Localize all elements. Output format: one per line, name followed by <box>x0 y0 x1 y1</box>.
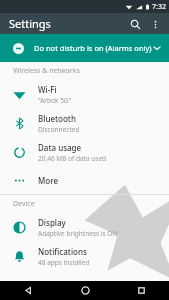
staticText: 48 apps installed <box>38 258 90 267</box>
staticText: More <box>38 175 59 186</box>
staticText: Bluetooth <box>38 113 76 124</box>
staticText: "Arbok 5G" <box>38 96 72 105</box>
button[interactable]: Display <box>0 213 169 242</box>
button[interactable]: Do not disturb is on (Alarms only) <box>0 34 169 62</box>
button[interactable]: Data usage <box>0 138 169 167</box>
button[interactable]: Wi-Fi <box>0 80 169 109</box>
button[interactable]: Bluetooth <box>0 109 169 138</box>
staticText: Device <box>13 199 35 209</box>
staticText: Wireless & networks <box>13 66 80 76</box>
button[interactable]: Recent apps <box>113 281 169 300</box>
staticText: Settings <box>9 16 51 31</box>
staticText: Adaptive brightness is ON <box>38 229 118 238</box>
button[interactable]: More <box>0 167 169 194</box>
button[interactable]: Back <box>0 281 57 300</box>
button[interactable]: Home <box>57 281 113 300</box>
staticText: Notifications <box>38 246 87 257</box>
staticText: Disconnected <box>38 125 80 134</box>
staticText: 7:32 <box>152 2 166 12</box>
staticText: Do not disturb is on (Alarms only) <box>34 43 152 53</box>
staticText: Data usage <box>38 142 82 153</box>
button[interactable]: Search <box>125 14 145 34</box>
staticText: Wi-Fi <box>38 84 57 95</box>
button[interactable]: More options <box>145 14 165 34</box>
button[interactable]: Notifications <box>0 242 169 271</box>
staticText: Display <box>38 217 66 228</box>
staticText: 20.46 MB of data used <box>38 154 107 163</box>
